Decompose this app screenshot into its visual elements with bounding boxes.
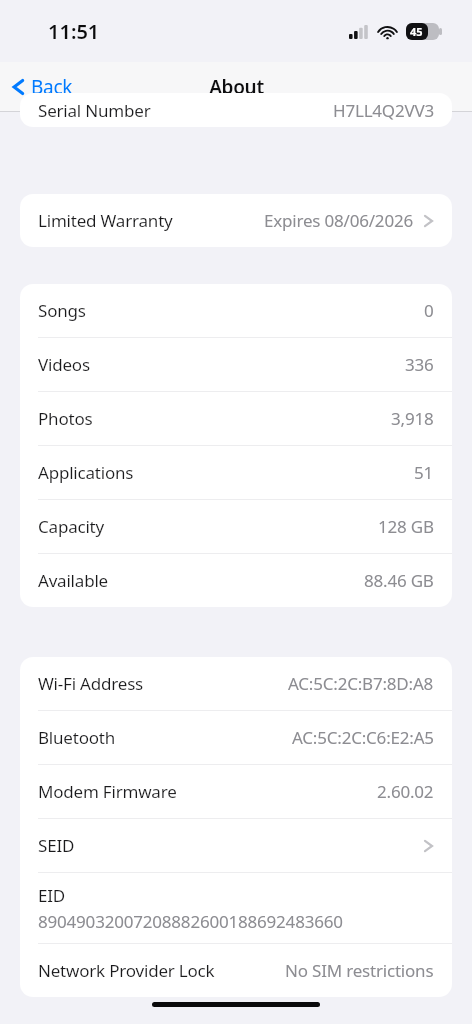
staticText: Network Provider Lock (38, 959, 215, 982)
staticText: Bluetooth (38, 726, 116, 749)
staticText: Available (38, 569, 108, 592)
button[interactable]: Bluetooth (20, 711, 452, 764)
staticText: SEID (38, 834, 75, 857)
button[interactable]: Photos (20, 392, 452, 445)
button[interactable]: Available (20, 554, 452, 607)
staticText: 89049032007208882600188692483660 (38, 910, 343, 933)
staticText: 128 GB (378, 515, 434, 538)
staticText: 45 (410, 24, 423, 39)
staticText: Expires 08/06/2026 (264, 209, 413, 232)
button[interactable]: Videos (20, 338, 452, 391)
button[interactable]: Songs (20, 284, 452, 337)
button[interactable]: SEID (20, 819, 452, 872)
button[interactable]: Network Provider Lock (20, 944, 452, 997)
button[interactable]: EID (20, 873, 452, 943)
button[interactable]: Serial Number (20, 93, 452, 127)
button[interactable]: Capacity (20, 500, 452, 553)
button[interactable]: Back (0, 70, 85, 104)
staticText: 88.46 GB (364, 569, 434, 592)
button[interactable]: Modem Firmware (20, 765, 452, 818)
staticText: Wi-Fi Address (38, 672, 144, 695)
staticText: 11:51 (48, 18, 100, 45)
other: Home indicator (152, 1002, 320, 1007)
staticText: EID (38, 884, 66, 907)
staticText: No SIM restrictions (285, 959, 434, 982)
staticText: 3,918 (391, 407, 434, 430)
staticText: 51 (414, 461, 434, 484)
staticText: Applications (38, 461, 134, 484)
staticText: Videos (38, 353, 90, 376)
staticText: Modem Firmware (38, 780, 177, 803)
staticText: AC:5C:2C:C6:E2:A5 (292, 726, 434, 749)
button[interactable]: Applications (20, 446, 452, 499)
staticText: H7LL4Q2VV3 (333, 99, 434, 122)
staticText: Limited Warranty (38, 209, 173, 232)
staticText: AC:5C:2C:B7:8D:A8 (288, 672, 434, 695)
staticText: 336 (405, 353, 434, 376)
button[interactable]: Limited Warranty (20, 194, 452, 247)
staticText: Photos (38, 407, 93, 430)
staticText: Back (31, 74, 73, 100)
button[interactable]: Wi-Fi Address (20, 657, 452, 710)
staticText: About (209, 74, 264, 100)
staticText: Songs (38, 299, 86, 322)
staticText: 0 (424, 299, 434, 322)
staticText: Capacity (38, 515, 105, 538)
staticText: Serial Number (38, 99, 151, 122)
staticText: 2.60.02 (377, 780, 434, 803)
